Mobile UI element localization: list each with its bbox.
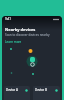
staticText: Nearby devices: [5, 27, 36, 32]
button[interactable]: Device A: [4, 86, 30, 100]
staticText: Device B: [35, 88, 47, 92]
button[interactable]: Device B: [33, 86, 60, 100]
staticText: Scan to discover devices nearby: [5, 33, 50, 37]
staticText: Learn more: [5, 40, 22, 44]
staticText: Device A: [6, 88, 18, 92]
staticText: 9:41: [5, 17, 11, 21]
